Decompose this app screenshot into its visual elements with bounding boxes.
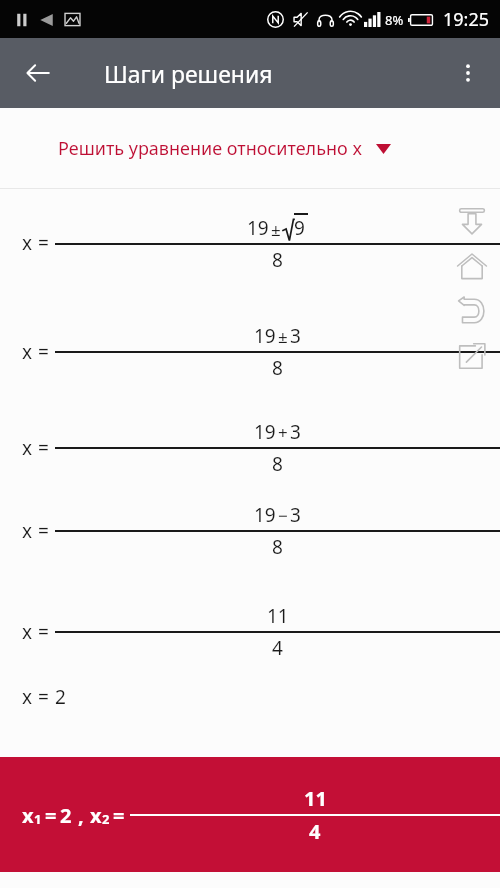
staticText: x	[22, 802, 34, 829]
staticText: 11	[304, 785, 327, 812]
staticText: ±	[271, 218, 281, 241]
staticText: 19	[254, 502, 276, 528]
staticText: 8	[272, 451, 283, 477]
staticText: 19:25	[443, 7, 490, 32]
staticText: 11	[267, 603, 289, 629]
staticText: 3	[290, 502, 301, 528]
staticText: 2	[102, 810, 110, 828]
staticText: 2	[55, 684, 66, 710]
staticText: ±	[278, 325, 288, 348]
staticText: 8%	[385, 11, 404, 29]
button[interactable]: Back	[16, 51, 60, 95]
staticText: 19	[247, 215, 269, 241]
staticText: =	[38, 230, 49, 256]
button[interactable]: Решить уравнение относительно x	[0, 108, 500, 188]
staticText: =	[38, 435, 49, 461]
staticText: =	[113, 802, 125, 829]
button[interactable]: Undo	[451, 290, 493, 332]
staticText: x	[22, 230, 33, 256]
staticText: 19	[254, 323, 276, 349]
button[interactable]: x	[0, 489, 500, 573]
staticText: x	[22, 518, 33, 544]
staticText: Шаги решения	[104, 58, 273, 89]
staticText: 19	[254, 419, 276, 445]
staticText: =	[38, 518, 49, 544]
staticText: 2	[60, 802, 72, 829]
staticText: x	[22, 684, 33, 710]
button[interactable]: Download	[451, 200, 493, 242]
staticText: Решить уравнение относительно x	[58, 136, 362, 161]
button[interactable]: Home	[451, 245, 493, 287]
staticText: ,	[78, 802, 84, 829]
staticText: =	[38, 684, 49, 710]
staticText: 4	[272, 635, 283, 661]
staticText: x	[22, 435, 33, 461]
staticText: 1	[34, 810, 42, 828]
staticText: x	[22, 619, 33, 645]
staticText: 8	[272, 355, 283, 381]
button[interactable]: x	[0, 297, 500, 407]
staticText: 8	[272, 247, 283, 273]
staticText: 3	[290, 419, 301, 445]
staticText: 3	[290, 323, 301, 349]
button[interactable]: Share	[451, 335, 493, 377]
staticText: −	[278, 504, 288, 527]
button[interactable]: x	[0, 595, 500, 669]
staticText: =	[38, 339, 49, 365]
staticText: x	[90, 802, 102, 829]
button[interactable]: x	[0, 189, 500, 297]
staticText: =	[38, 619, 49, 645]
button[interactable]: x	[0, 669, 500, 725]
button[interactable]: More options	[446, 51, 490, 95]
staticText: =	[45, 802, 57, 829]
button[interactable]: x	[0, 407, 500, 489]
staticText: 8	[272, 534, 283, 560]
button[interactable]: x	[0, 757, 500, 872]
staticText: +	[278, 421, 288, 444]
staticText: 4	[309, 818, 321, 845]
staticText: x	[22, 339, 33, 365]
staticText: 9	[294, 215, 305, 241]
